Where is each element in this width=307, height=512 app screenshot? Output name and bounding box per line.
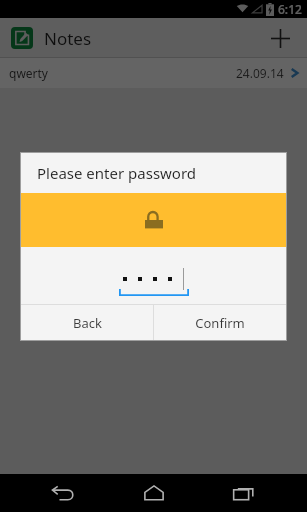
button[interactable]: Confirm xyxy=(154,305,286,340)
button[interactable]: qwerty xyxy=(0,58,307,88)
button[interactable]: Add note xyxy=(261,19,299,57)
button[interactable]: Recent apps xyxy=(217,474,271,512)
button[interactable]: Home xyxy=(127,474,181,512)
staticText: qwerty xyxy=(9,65,48,81)
staticText: Confirm xyxy=(195,314,245,332)
staticText: 24.09.14 xyxy=(236,65,284,81)
staticText: Please enter password xyxy=(37,163,197,183)
staticText: Notes xyxy=(44,27,92,50)
staticText: Back xyxy=(73,314,102,332)
staticText: 6:12 xyxy=(278,1,302,17)
button[interactable]: Back xyxy=(21,305,153,340)
button[interactable]: Back xyxy=(36,474,90,512)
